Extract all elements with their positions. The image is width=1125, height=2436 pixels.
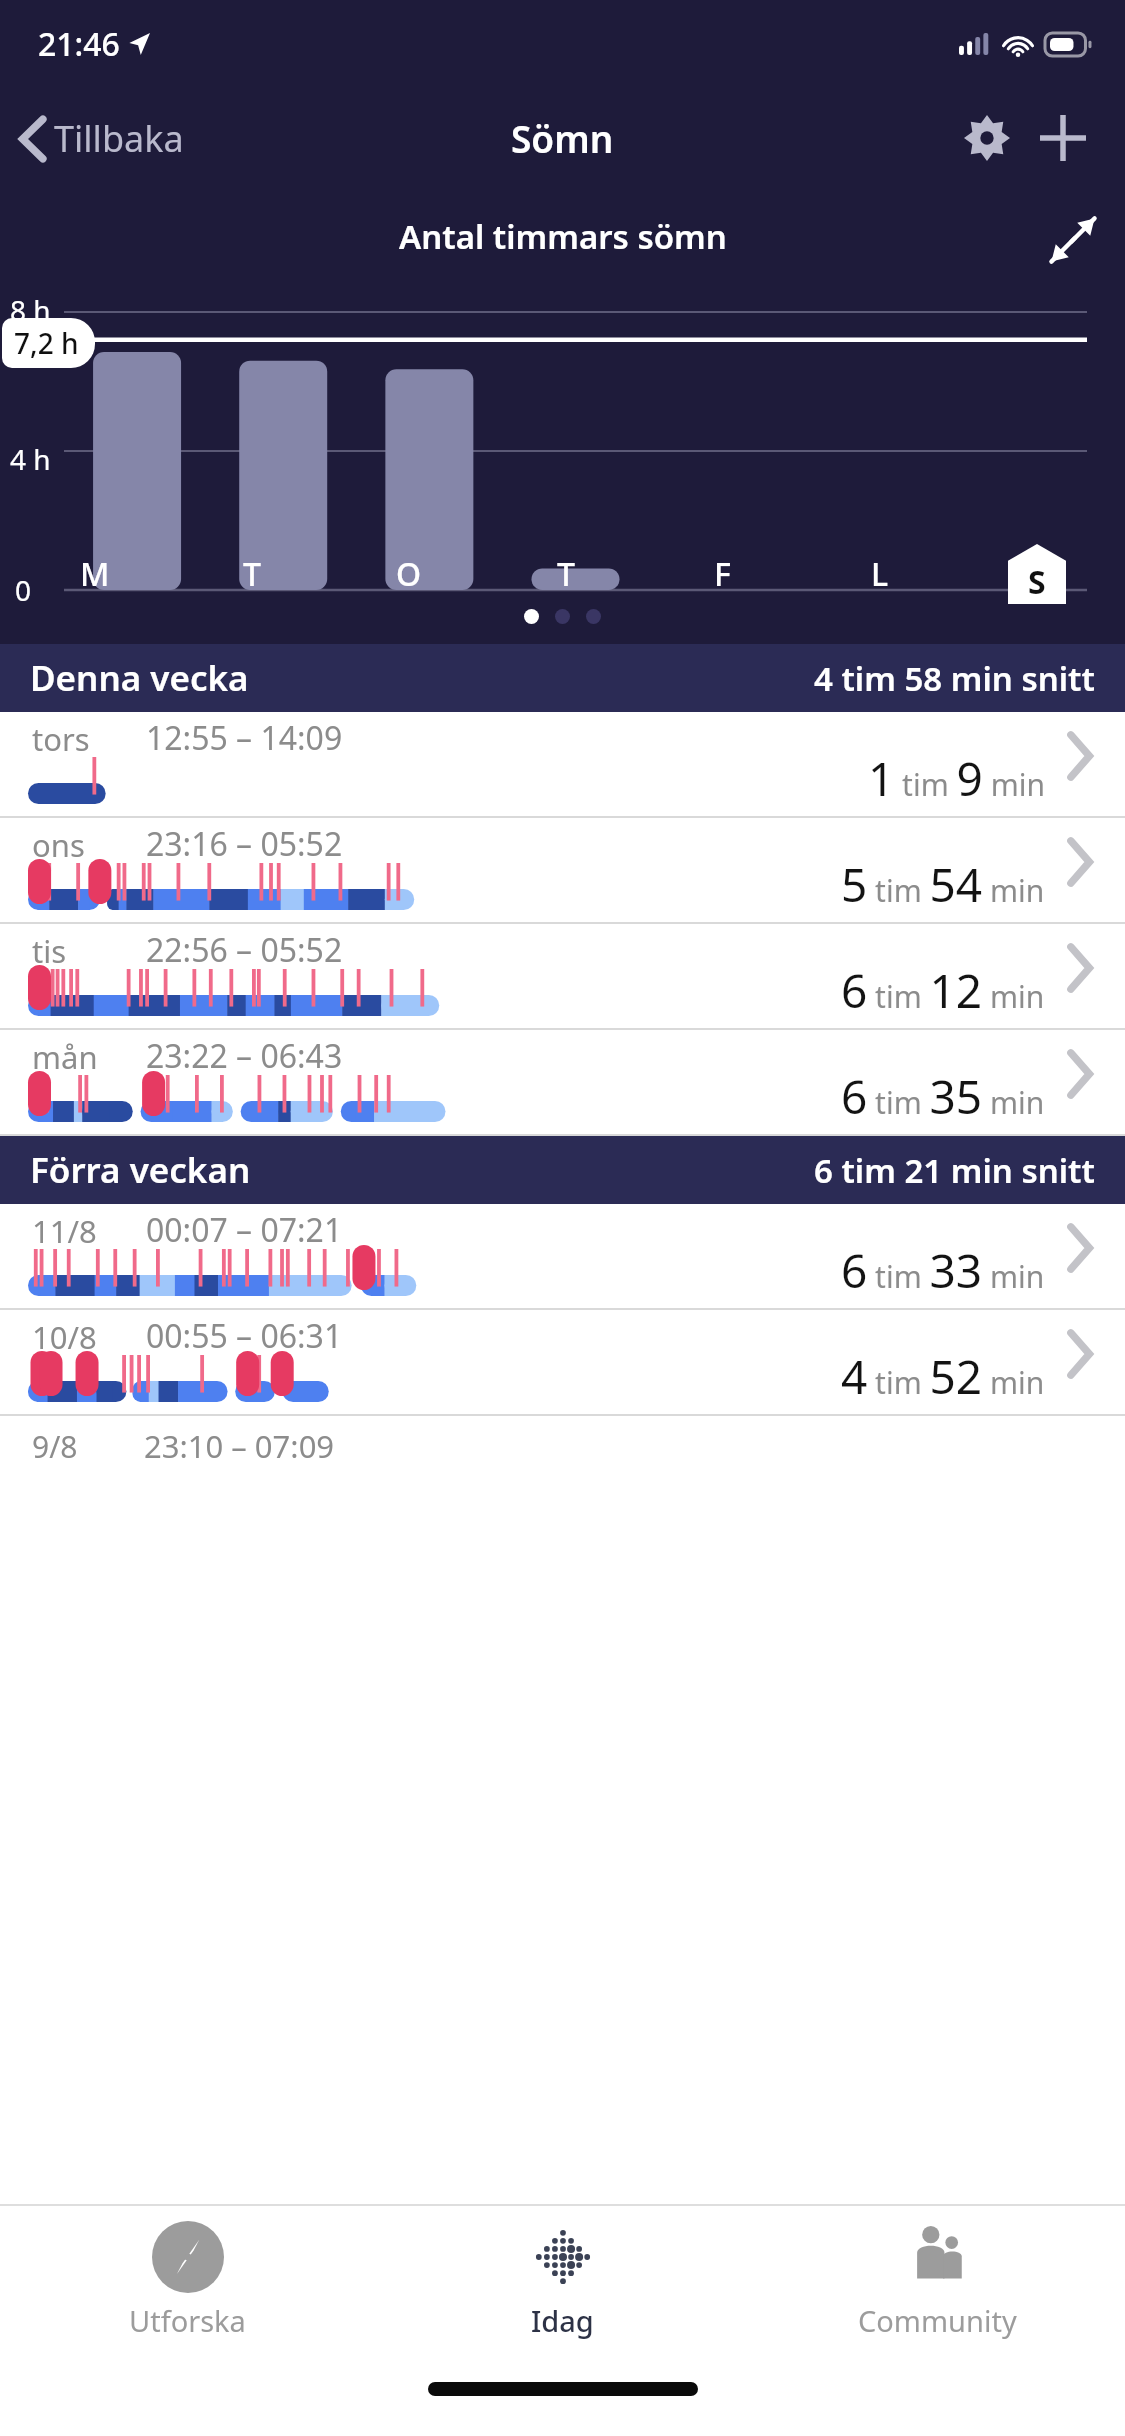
staticText: Förra veckan xyxy=(30,1146,251,1194)
button[interactable]: Settings xyxy=(949,100,1025,176)
staticText: 6 tim 12 min xyxy=(841,959,1045,1022)
staticText: 4 h xyxy=(10,440,51,478)
staticText: Denna vecka xyxy=(30,654,249,702)
staticText: F xyxy=(714,552,731,596)
staticText: 21:46 xyxy=(38,22,120,66)
staticText: 8 h xyxy=(10,291,51,329)
staticText: 23:10 – 07:09 xyxy=(144,1425,335,1467)
staticText: mån xyxy=(32,1036,98,1078)
staticText: 10/8 xyxy=(32,1316,97,1358)
staticText: 0 xyxy=(15,571,32,609)
button[interactable]: 11/8 xyxy=(0,1204,1125,1310)
button[interactable]: Idag xyxy=(375,2206,750,2354)
staticText: 22:56 – 05:52 xyxy=(146,928,343,972)
button[interactable]: mån xyxy=(0,1030,1125,1136)
staticText: L xyxy=(871,552,889,596)
staticText: 00:07 – 07:21 xyxy=(146,1208,343,1252)
button[interactable]: Add xyxy=(1025,100,1101,176)
staticText: O xyxy=(396,552,422,596)
staticText: Sömn xyxy=(511,113,614,163)
staticText: Tillbaka xyxy=(54,114,184,163)
staticText: 12:55 – 14:09 xyxy=(146,716,343,760)
staticText: M xyxy=(80,552,110,596)
staticText: S xyxy=(1028,560,1046,604)
staticText: Utforska xyxy=(129,2301,246,2340)
staticText: 6 tim 21 min snitt xyxy=(814,1148,1095,1193)
button[interactable]: Tillbaka xyxy=(0,104,202,173)
staticText: Antal timmars sömn xyxy=(399,214,727,259)
button[interactable]: tis xyxy=(0,924,1125,1030)
staticText: Idag xyxy=(531,2301,594,2340)
button[interactable]: 10/8 xyxy=(0,1310,1125,1416)
staticText: 00:55 – 06:31 xyxy=(146,1314,343,1358)
staticText: 11/8 xyxy=(32,1210,97,1252)
button[interactable]: ons xyxy=(0,818,1125,924)
staticText: Community xyxy=(858,2301,1017,2340)
staticText: 9/8 xyxy=(32,1426,78,1467)
staticText: 4 tim 52 min xyxy=(841,1345,1045,1408)
staticText: tors xyxy=(32,718,90,760)
staticText: ons xyxy=(32,824,85,866)
button[interactable]: Community xyxy=(750,2206,1125,2354)
staticText: T xyxy=(557,552,575,596)
staticText: 6 tim 33 min xyxy=(841,1239,1045,1302)
button[interactable]: Expand chart xyxy=(1029,196,1117,284)
staticText: 1 tim 9 min xyxy=(868,747,1045,810)
staticText: tis xyxy=(32,930,67,972)
staticText: 4 tim 58 min snitt xyxy=(814,656,1095,701)
staticText: 7,2 h xyxy=(14,324,79,362)
staticText: 5 tim 54 min xyxy=(841,853,1045,916)
staticText: 23:22 – 06:43 xyxy=(146,1034,343,1078)
button[interactable]: Utforska xyxy=(0,2206,375,2354)
button[interactable]: tors xyxy=(0,712,1125,818)
staticText: T xyxy=(243,552,261,596)
staticText: 23:16 – 05:52 xyxy=(146,822,343,866)
staticText: 6 tim 35 min xyxy=(841,1065,1045,1128)
button[interactable]: 9/8 xyxy=(0,1416,1125,1476)
